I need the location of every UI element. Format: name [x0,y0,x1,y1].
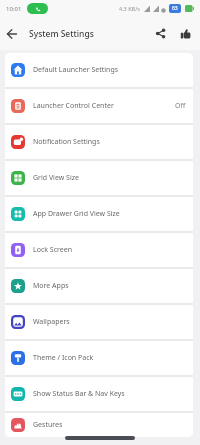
staticText: App Drawer Grid View Size [33,209,120,219]
button[interactable]: More Apps [5,269,193,303]
staticText: System Settings [29,28,94,40]
staticText: 63 [172,5,178,12]
button[interactable]: Show Status Bar & Nav Keys [5,377,193,411]
button[interactable]: Launcher Control Center [5,89,193,123]
button[interactable]: Gestures [5,413,193,437]
button[interactable]: Notification Settings [5,125,193,159]
staticText: Grid View Size [33,173,79,183]
staticText: Show Status Bar & Nav Keys [33,389,125,399]
button[interactable]: App Drawer Grid View Size [5,197,193,231]
staticText: 10:01 [6,5,22,13]
button[interactable]: Lock Screen [5,233,193,267]
staticText: Off [175,101,186,111]
button[interactable] [153,26,168,41]
staticText: Gestures [33,420,63,430]
button[interactable]: Theme / Icon Pack [5,341,193,375]
staticText: 4.3 KB/s [119,5,140,12]
staticText: Wallpapers [33,317,70,327]
staticText: Notification Settings [33,137,100,147]
staticText: More Apps [33,281,69,291]
staticText: Theme / Icon Pack [33,353,94,363]
staticText: Default Launcher Settings [33,65,119,75]
staticText: Launcher Control Center [33,101,114,111]
button[interactable]: Default Launcher Settings [5,53,193,87]
button[interactable]: Grid View Size [5,161,193,195]
button[interactable] [4,26,20,42]
staticText: Lock Screen [33,245,72,255]
button[interactable]: Wallpapers [5,305,193,339]
button[interactable] [178,26,193,41]
